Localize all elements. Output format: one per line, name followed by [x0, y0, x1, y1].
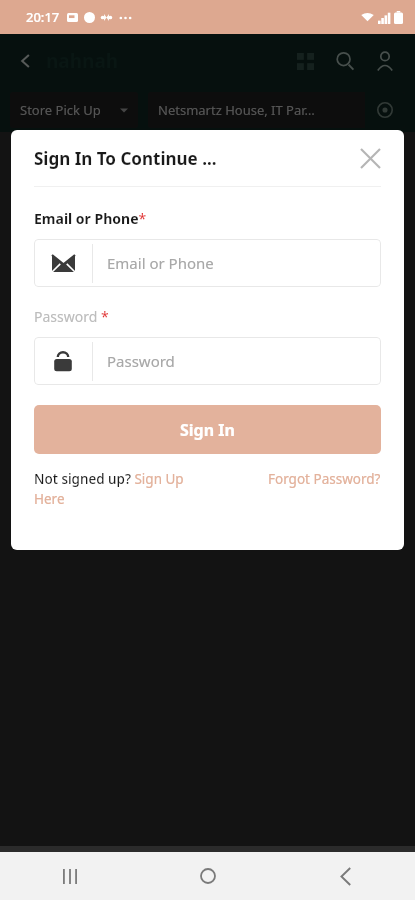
button[interactable]: Account: [365, 41, 405, 81]
staticText: Store Pick Up: [20, 101, 101, 119]
button[interactable]: Fish and Seafood: [207, 260, 415, 356]
staticText: Email or Phone*: [34, 209, 147, 228]
button[interactable]: Canned Goods: [0, 146, 207, 242]
staticText: Not signed up? Sign Up Here: [34, 470, 194, 508]
staticText: Email or Phone: [107, 253, 214, 273]
button[interactable]: Sign In: [34, 405, 381, 454]
staticText: Netsmartz House, IT Par…: [158, 101, 365, 119]
button[interactable]: Not signed up? Sign Up Here: [34, 470, 194, 508]
staticText: Fish and Seafood: [251, 336, 372, 356]
button[interactable]: Netsmartz House, IT Par…: [148, 92, 405, 128]
staticText: Password: [107, 351, 175, 371]
staticText: Meat: [86, 336, 122, 356]
staticText: Forgot Password?: [268, 470, 381, 488]
staticText: Canned Goods: [52, 222, 156, 242]
button[interactable]: Locate: [365, 92, 405, 128]
staticText: 20:17: [26, 8, 60, 26]
button[interactable]: Password: [34, 337, 381, 385]
button[interactable]: Meat: [0, 260, 207, 356]
button[interactable]: Close: [352, 140, 388, 176]
button[interactable]: Scan: [285, 41, 325, 81]
staticText: Sign In To Continue ...: [34, 147, 217, 170]
button[interactable]: Home: [139, 852, 277, 900]
button[interactable]: Back: [8, 43, 44, 79]
staticText: Password *: [34, 307, 109, 326]
button[interactable]: Forgot Password?: [268, 470, 381, 488]
staticText: Sign In: [180, 419, 235, 441]
button[interactable]: Store Pick Up: [10, 92, 138, 128]
staticText: Dairy: [292, 222, 330, 242]
button[interactable]: Search: [325, 41, 365, 81]
button[interactable]: Recents: [0, 852, 139, 900]
button[interactable]: Email or Phone: [34, 239, 381, 287]
button[interactable]: Back: [277, 852, 415, 900]
button[interactable]: Dairy: [207, 146, 415, 242]
